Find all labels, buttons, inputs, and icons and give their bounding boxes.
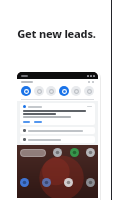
button[interactable] xyxy=(23,121,30,123)
button[interactable] xyxy=(34,121,42,123)
button[interactable] xyxy=(20,136,95,143)
button[interactable] xyxy=(20,149,46,157)
button[interactable]: Phone xyxy=(20,178,29,187)
button[interactable]: App xyxy=(86,148,95,157)
button[interactable]: Settings xyxy=(86,178,95,187)
button[interactable]: Do not disturb xyxy=(46,86,56,96)
button[interactable]: Phone app xyxy=(70,148,79,157)
button[interactable]: Auto-rotate xyxy=(71,86,81,96)
button[interactable]: Battery saver xyxy=(84,86,94,96)
button[interactable]: Camera xyxy=(64,178,73,187)
button[interactable]: Wi-Fi xyxy=(21,86,31,96)
button[interactable]: Messages xyxy=(42,178,51,187)
button[interactable] xyxy=(20,127,95,134)
button[interactable]: App xyxy=(53,148,62,157)
button[interactable]: Flashlight xyxy=(59,86,69,96)
staticText: Get new leads. xyxy=(17,26,96,41)
button[interactable] xyxy=(20,103,95,125)
button[interactable]: Bluetooth xyxy=(34,86,44,96)
